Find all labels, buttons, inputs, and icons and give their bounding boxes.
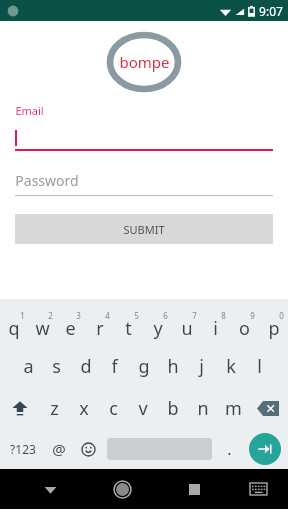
button[interactable]: t: [114, 305, 143, 345]
staticText: i: [213, 316, 218, 341]
button[interactable]: s: [42, 345, 71, 387]
button[interactable]: Password: [15, 171, 273, 196]
button[interactable]: h: [158, 345, 187, 387]
button[interactable]: k: [216, 345, 245, 387]
staticText: Password: [15, 171, 79, 190]
staticText: .: [227, 438, 232, 460]
staticText: p: [268, 316, 280, 341]
button[interactable]: .: [216, 429, 242, 469]
button[interactable]: Backspace: [248, 387, 288, 429]
button[interactable]: Next: [249, 433, 281, 465]
staticText: g: [138, 354, 150, 379]
staticText: @: [52, 439, 66, 459]
button[interactable]: o: [230, 305, 259, 345]
button[interactable]: Hide keyboard: [30, 469, 70, 509]
button[interactable]: j: [187, 345, 216, 387]
staticText: s: [52, 354, 61, 379]
button[interactable]: g: [129, 345, 158, 387]
staticText: e: [65, 316, 76, 341]
button[interactable]: ?123: [0, 429, 45, 469]
button[interactable]: e: [56, 305, 85, 345]
staticText: c: [109, 396, 118, 421]
button[interactable]: f: [100, 345, 129, 387]
staticText: b: [167, 396, 179, 421]
staticText: 8: [221, 310, 226, 321]
staticText: t: [125, 316, 132, 341]
staticText: ?123: [10, 441, 36, 457]
button[interactable]: b: [158, 387, 188, 429]
staticText: m: [225, 396, 242, 421]
staticText: 1: [20, 310, 25, 321]
staticText: o: [239, 316, 250, 341]
staticText: 9: [250, 310, 255, 321]
staticText: bompe: [119, 52, 170, 72]
button[interactable]: SUBMIT: [15, 214, 273, 244]
button[interactable]: r: [85, 305, 114, 345]
staticText: 4: [105, 310, 110, 321]
staticText: 6: [163, 310, 168, 321]
button[interactable]: z: [40, 387, 69, 429]
staticText: l: [257, 354, 262, 379]
staticText: n: [197, 396, 209, 421]
staticText: v: [138, 396, 148, 421]
staticText: k: [226, 354, 236, 379]
button[interactable]: a: [14, 345, 42, 387]
button[interactable]: Switch keyboard: [238, 469, 278, 509]
staticText: h: [167, 354, 179, 379]
button[interactable]: w: [28, 305, 56, 345]
button[interactable]: Email: [15, 103, 273, 151]
staticText: f: [111, 354, 118, 379]
button[interactable]: v: [128, 387, 158, 429]
staticText: u: [181, 316, 193, 341]
staticText: z: [50, 396, 59, 421]
button[interactable]: i: [201, 305, 230, 345]
button[interactable]: u: [172, 305, 201, 345]
staticText: 7: [192, 310, 197, 321]
staticText: q: [8, 316, 20, 341]
staticText: 2: [48, 310, 53, 321]
button[interactable]: d: [71, 345, 100, 387]
staticText: j: [199, 354, 204, 379]
staticText: Email: [15, 103, 44, 118]
button[interactable]: c: [98, 387, 128, 429]
button[interactable]: m: [218, 387, 248, 429]
button[interactable]: n: [188, 387, 218, 429]
button[interactable]: Emoji: [73, 429, 103, 469]
button[interactable]: At sign: [45, 429, 73, 469]
button[interactable]: y: [143, 305, 172, 345]
staticText: r: [96, 316, 104, 341]
button[interactable]: p: [259, 305, 288, 345]
staticText: y: [153, 316, 163, 341]
button[interactable]: Shift: [0, 387, 40, 429]
button[interactable]: Recents: [174, 469, 214, 509]
staticText: d: [80, 354, 92, 379]
button[interactable]: l: [245, 345, 274, 387]
button[interactable]: x: [69, 387, 98, 429]
staticText: w: [35, 316, 50, 341]
staticText: 5: [134, 310, 139, 321]
button[interactable]: q: [0, 305, 28, 345]
staticText: 3: [76, 310, 81, 321]
staticText: a: [23, 354, 34, 379]
staticText: 9:07: [259, 3, 283, 19]
button[interactable]: Home: [102, 469, 142, 509]
staticText: x: [79, 396, 89, 421]
staticText: SUBMIT: [123, 222, 165, 237]
staticText: 0: [279, 310, 284, 321]
